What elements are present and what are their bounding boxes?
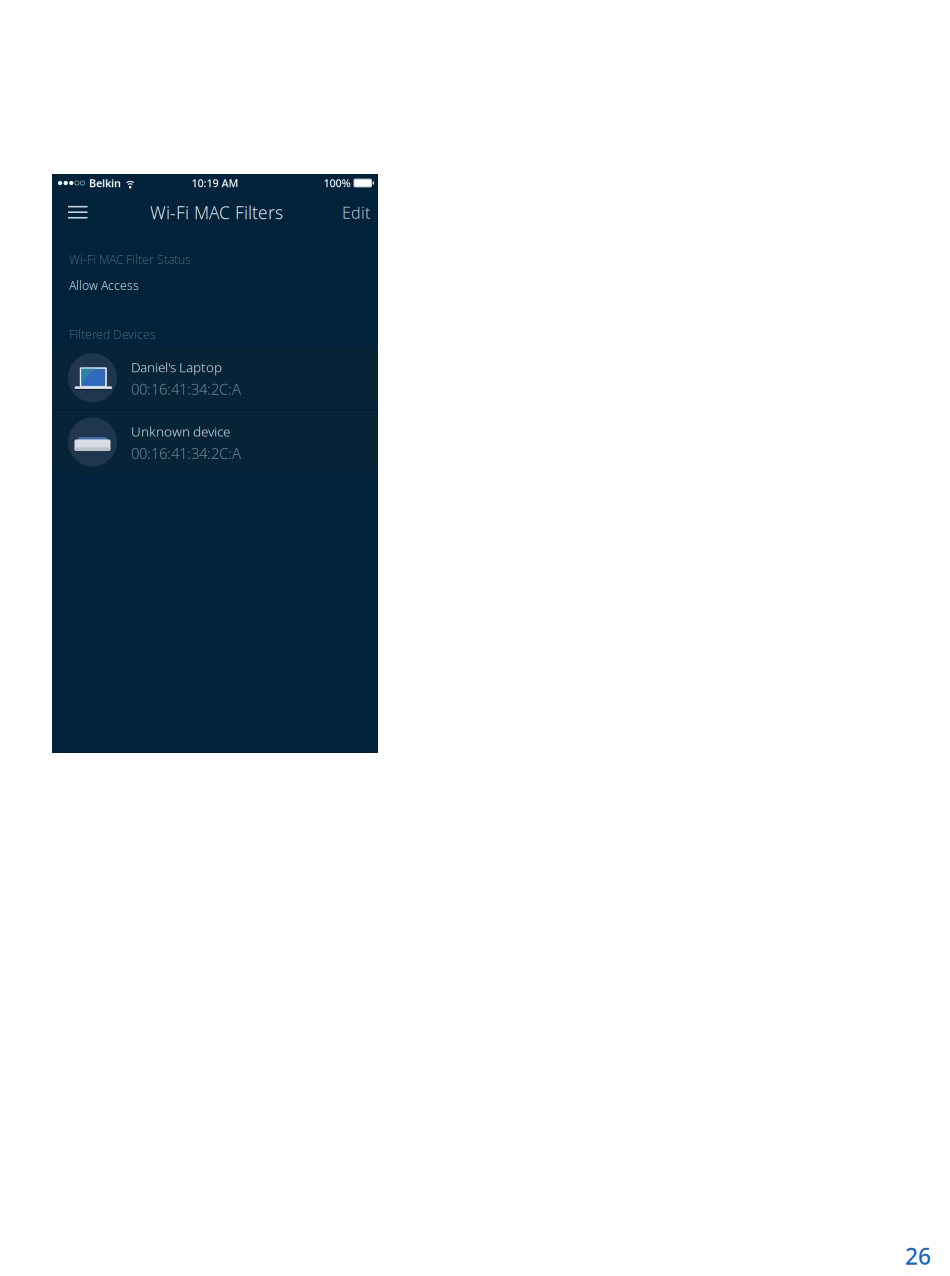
button[interactable]: Menu bbox=[52, 192, 100, 230]
staticText: 26 bbox=[905, 1241, 931, 1271]
staticText: Belkin bbox=[89, 176, 121, 190]
staticText: Allow Access bbox=[69, 277, 139, 293]
staticText: Unknown device bbox=[131, 422, 230, 440]
button[interactable]: Daniel's Laptop bbox=[52, 346, 378, 409]
staticText: Wi-Fi MAC Filters bbox=[150, 201, 283, 224]
button[interactable]: Allow Access bbox=[52, 267, 378, 297]
button[interactable]: Unknown device bbox=[52, 410, 378, 473]
staticText: 00:16:41:34:2C:A bbox=[131, 379, 241, 399]
staticText: Daniel's Laptop bbox=[131, 358, 222, 376]
button[interactable]: Edit bbox=[334, 192, 378, 230]
staticText: 100% bbox=[323, 176, 350, 190]
staticText: Filtered Devices bbox=[69, 326, 156, 342]
staticText: Wi-Fi MAC Filter Status bbox=[69, 251, 191, 267]
staticText: 10:19 AM bbox=[191, 176, 238, 190]
staticText: Edit bbox=[342, 202, 370, 223]
staticText: 00:16:41:34:2C:A bbox=[131, 443, 241, 463]
